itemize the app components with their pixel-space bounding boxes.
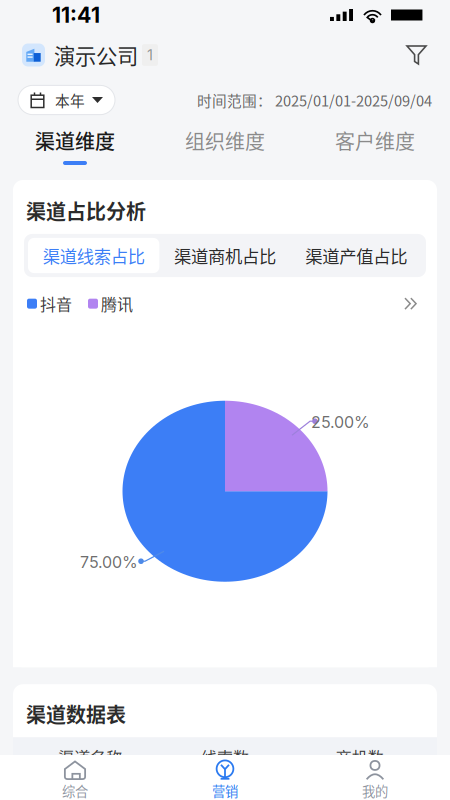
staticText: 组织维度 (185, 126, 265, 155)
staticText: 75.00% (80, 552, 138, 572)
staticText: 渠道名称 (58, 745, 122, 768)
button[interactable]: 客户维度 (300, 120, 450, 172)
button[interactable]: 筛选 (401, 40, 432, 70)
staticText: 渠道占比分析 (26, 196, 146, 225)
staticText: 线索数 (201, 745, 249, 768)
button[interactable]: 组织维度 (150, 120, 300, 172)
staticText: 25.00% (311, 412, 370, 432)
button[interactable]: 渠道线索占比 (28, 238, 159, 273)
button[interactable]: 本年 (18, 85, 115, 115)
button[interactable]: 渠道产值占比 (291, 238, 422, 273)
button[interactable]: 渠道维度 (0, 120, 150, 172)
staticText: 本年 (55, 89, 85, 111)
staticText: 时间范围： 2025/01/01-2025/09/04 (197, 89, 432, 111)
staticText: 营销 (212, 781, 238, 800)
staticText: 我的 (362, 781, 388, 800)
staticText: 11:41 (52, 2, 100, 28)
staticText: 腾讯 (101, 292, 133, 315)
staticText: 商机数 (336, 745, 384, 768)
staticText: 客户维度 (335, 126, 415, 155)
button[interactable]: 演示公司 (22, 40, 158, 70)
staticText: 渠道商机占比 (174, 243, 276, 268)
button[interactable]: 更多 (400, 293, 423, 314)
staticText: 1 (147, 46, 153, 64)
staticText: 渠道维度 (35, 126, 115, 155)
staticText: 演示公司 (54, 40, 138, 70)
button[interactable]: 渠道商机占比 (159, 238, 291, 273)
staticText: 渠道线索占比 (43, 243, 145, 268)
button[interactable]: 综合 (0, 755, 150, 800)
button[interactable]: 营销 (150, 755, 300, 800)
staticText: 抖音 (40, 292, 72, 315)
staticText: 综合 (62, 781, 88, 800)
staticText: 渠道数据表 (26, 699, 126, 728)
staticText: 渠道产值占比 (305, 243, 407, 268)
button[interactable]: 我的 (300, 755, 450, 800)
